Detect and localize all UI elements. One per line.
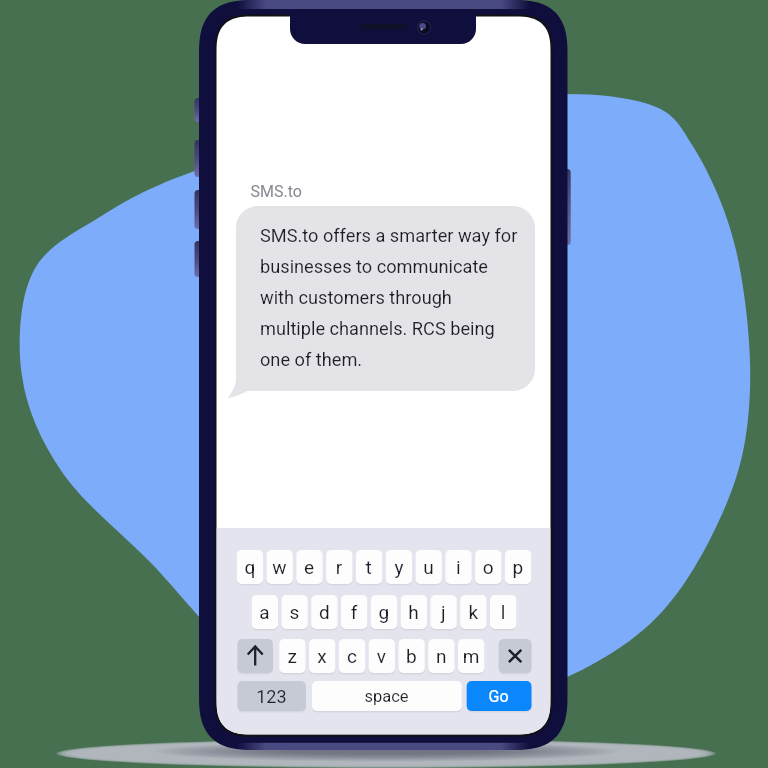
button[interactable]: SMS.to phone message preview <box>0 0 768 768</box>
